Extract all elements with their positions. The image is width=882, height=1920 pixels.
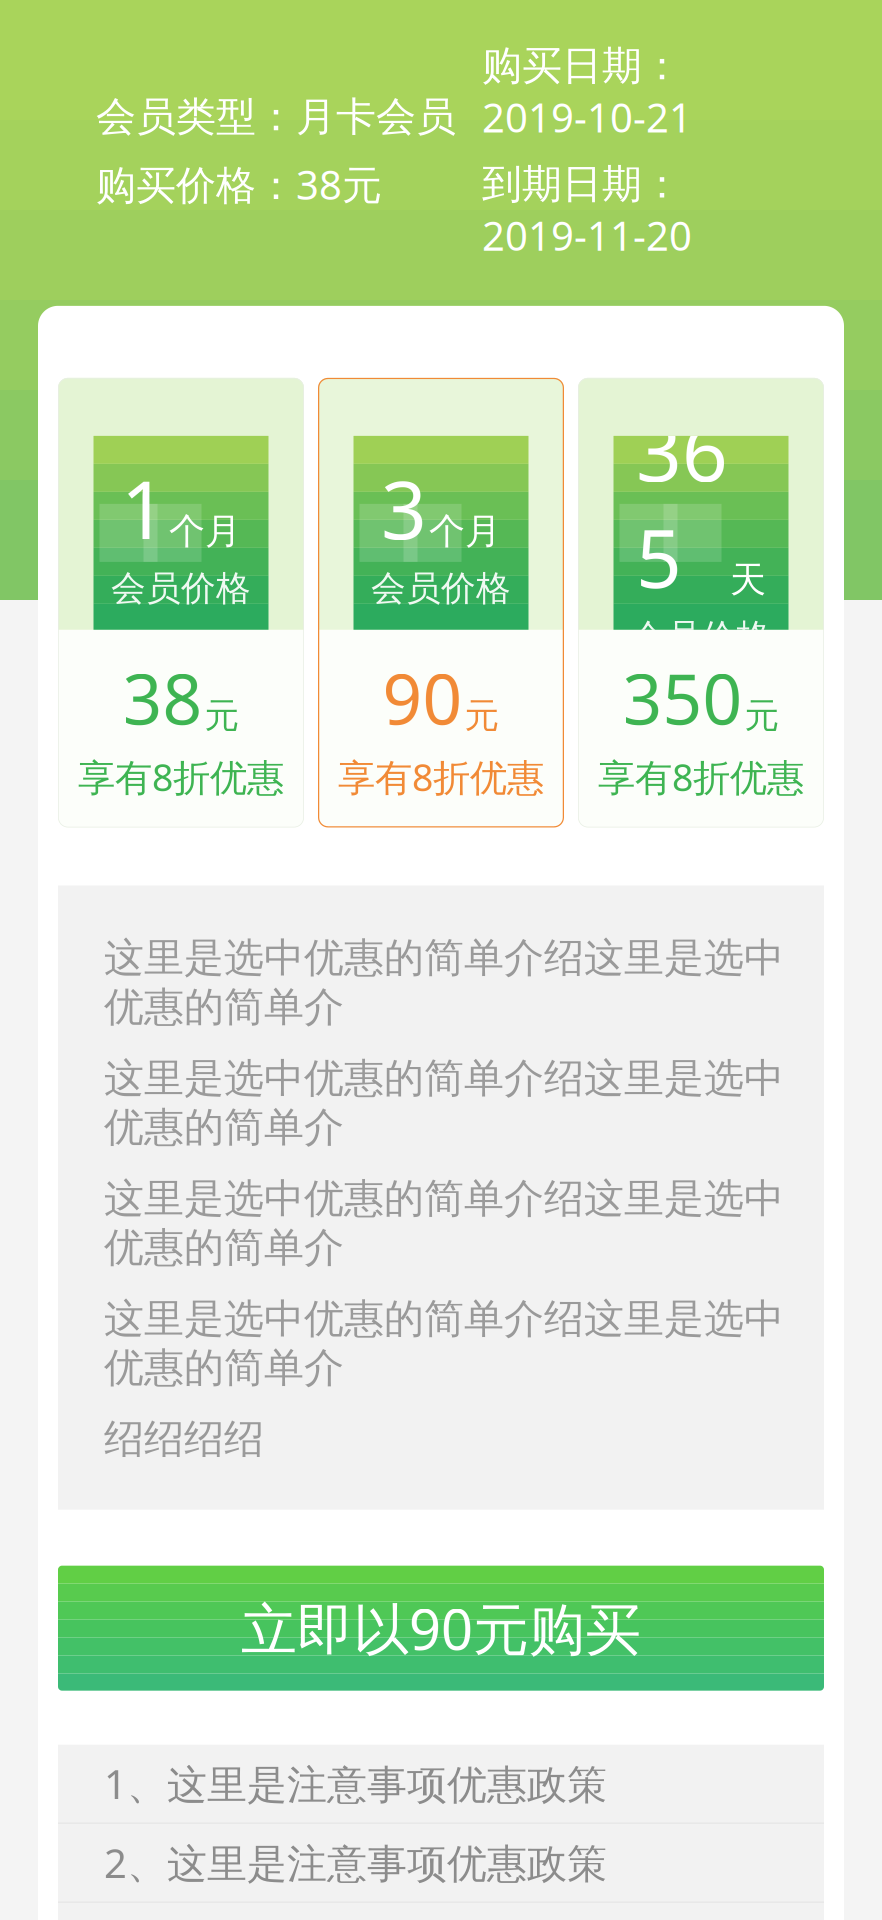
staticText: 会员价格 xyxy=(631,616,771,658)
staticText: 350 xyxy=(622,652,742,744)
staticText: 3 xyxy=(381,455,427,561)
staticText: 享有8折优惠 xyxy=(598,752,804,801)
staticText: 享有8折优惠 xyxy=(78,752,284,801)
staticText: 立即以90元购买 xyxy=(241,1591,641,1665)
staticText: 1 xyxy=(121,455,167,561)
staticText: 这里是选中优惠的简单介绍这里是选中优惠的简单介 xyxy=(104,1054,784,1152)
staticText: 38 xyxy=(122,652,202,744)
staticText: 个月 xyxy=(429,509,501,553)
staticText: 元 xyxy=(204,694,239,737)
staticText: 这里是选中优惠的简单介绍这里是选中优惠的简单介 xyxy=(104,1294,784,1393)
staticText: 天 xyxy=(730,558,766,602)
button[interactable]: 立即以90元购买 xyxy=(38,1566,844,1691)
staticText: 购买日期：2019-10-21 xyxy=(482,41,692,143)
staticText: 个月 xyxy=(169,509,241,553)
staticText: 会员价格 xyxy=(111,567,251,610)
staticText: 2、这里是注意事项优惠政策 xyxy=(104,1836,607,1889)
staticText: 这里是选中优惠的简单介绍这里是选中优惠的简单介 xyxy=(104,933,784,1032)
staticText: 1、这里是注意事项优惠政策 xyxy=(104,1757,607,1810)
staticText: 365 xyxy=(636,397,728,610)
button[interactable]: 365 xyxy=(578,378,824,827)
staticText: 元 xyxy=(744,694,779,737)
staticText: 享有8折优惠 xyxy=(338,752,544,801)
button[interactable]: 1 xyxy=(58,378,304,827)
staticText: 购买价格：38元 xyxy=(96,158,382,211)
staticText: 会员类型：月卡会员 xyxy=(96,92,456,142)
staticText: 90 xyxy=(382,652,462,744)
staticText: 这里是选中优惠的简单介绍这里是选中优惠的简单介 xyxy=(104,1174,784,1272)
button[interactable]: 3 xyxy=(318,378,564,827)
staticText: 元 xyxy=(464,694,499,737)
staticText: 绍绍绍绍 xyxy=(104,1414,264,1464)
staticText: 会员价格 xyxy=(371,567,511,610)
staticText: 到期日期：2019-11-20 xyxy=(482,160,692,262)
